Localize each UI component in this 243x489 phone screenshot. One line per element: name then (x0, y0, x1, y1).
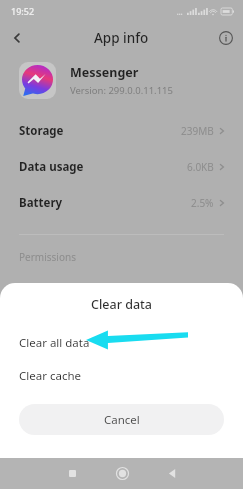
button[interactable]: Info (209, 22, 243, 54)
staticText: Clear all data (19, 335, 90, 351)
staticText: Data usage (19, 159, 84, 175)
staticText: Storage (19, 123, 64, 139)
staticText: Permissions (19, 250, 76, 264)
staticText: 2.5% (191, 196, 214, 210)
button[interactable]: Clear all data (0, 326, 243, 359)
button[interactable]: Battery (0, 185, 243, 221)
button[interactable]: Storage (0, 113, 243, 149)
button[interactable]: Data usage (0, 149, 243, 185)
staticText: 239MB (181, 124, 214, 138)
button[interactable]: Cancel (19, 404, 224, 435)
staticText: 6.0KB (187, 160, 214, 174)
staticText: Clear data (0, 296, 243, 313)
staticText: Version: 299.0.0.11.115 (70, 84, 173, 97)
button[interactable]: Back (0, 22, 34, 54)
staticText: App info (94, 29, 149, 47)
staticText: Cancel (104, 412, 140, 428)
button[interactable]: Recents (52, 458, 92, 489)
button[interactable]: Clear cache (0, 359, 243, 392)
button[interactable]: Back (152, 458, 192, 489)
button[interactable]: Home (102, 458, 142, 489)
staticText: Messenger (70, 64, 139, 81)
staticText: Battery (19, 195, 63, 211)
staticText: 19:52 (11, 5, 35, 17)
staticText: Clear cache (19, 368, 81, 384)
